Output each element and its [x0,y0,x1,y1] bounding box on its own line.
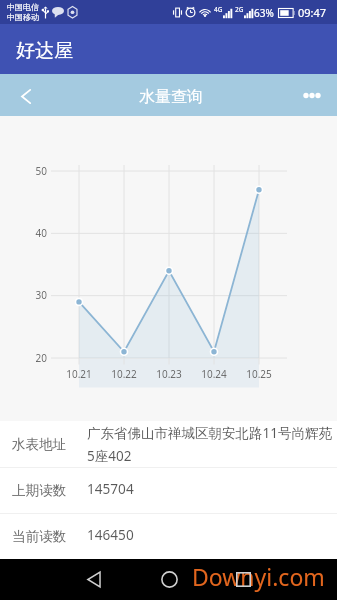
staticText: 当前读数 [12,528,87,545]
staticText: 水量查询 [139,87,203,107]
button[interactable]: More options [301,74,337,116]
staticText: 40 [27,226,47,240]
staticText: 145704 [87,479,134,498]
staticText: 10.21 [61,367,97,381]
button[interactable]: 当前读数 [0,514,337,559]
staticText: 上期读数 [12,482,87,499]
button[interactable]: 水表地址 [0,421,337,467]
staticText: 30 [27,288,47,302]
staticText: 10.25 [241,367,277,381]
staticText: Downyi.com [192,561,325,592]
staticText: 09:47 [298,5,327,20]
staticText: 中国移动 [7,12,39,22]
staticText: 水表地址 [12,436,87,453]
staticText: 中国电信 [7,2,39,12]
staticText: 4G [214,5,223,14]
staticText: 10.24 [196,367,232,381]
button[interactable]: 上期读数 [0,468,337,513]
button[interactable]: Recent apps [224,560,262,598]
button[interactable]: Back [0,74,46,116]
staticText: 10.22 [106,367,142,381]
staticText: 63% [254,6,274,20]
staticText: 20 [27,351,47,365]
staticText: 好达屋 [16,39,73,63]
staticText: 146450 [87,525,134,544]
staticText: 10.23 [151,367,187,381]
staticText: 广东省佛山市禅城区朝安北路11号尚辉苑5座402 [87,424,334,465]
button[interactable]: Home [150,560,188,598]
staticText: 2G [235,5,244,14]
button[interactable]: Back [75,560,113,598]
staticText: 50 [27,164,47,178]
